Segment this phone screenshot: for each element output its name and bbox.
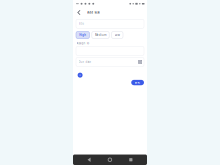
button[interactable]: Back — [75, 8, 83, 16]
staticText: Due date — [79, 60, 92, 64]
staticText: Low — [115, 33, 120, 37]
button[interactable]: Medium — [92, 31, 109, 38]
staticText: Save — [135, 81, 141, 84]
staticText: High — [79, 33, 86, 37]
staticText: Medium — [95, 33, 106, 37]
button[interactable]: Recent apps — [126, 155, 135, 164]
button[interactable]: Back — [84, 155, 93, 165]
button[interactable]: Home — [105, 155, 115, 165]
button[interactable]: Save — [131, 80, 144, 85]
button[interactable]: Low — [112, 31, 123, 38]
staticText: Assign To — [77, 41, 90, 45]
button[interactable]: Assignee — [78, 73, 83, 78]
staticText: Add Task — [87, 11, 100, 14]
staticText: Title — [79, 22, 85, 25]
button[interactable]: High — [76, 31, 89, 38]
